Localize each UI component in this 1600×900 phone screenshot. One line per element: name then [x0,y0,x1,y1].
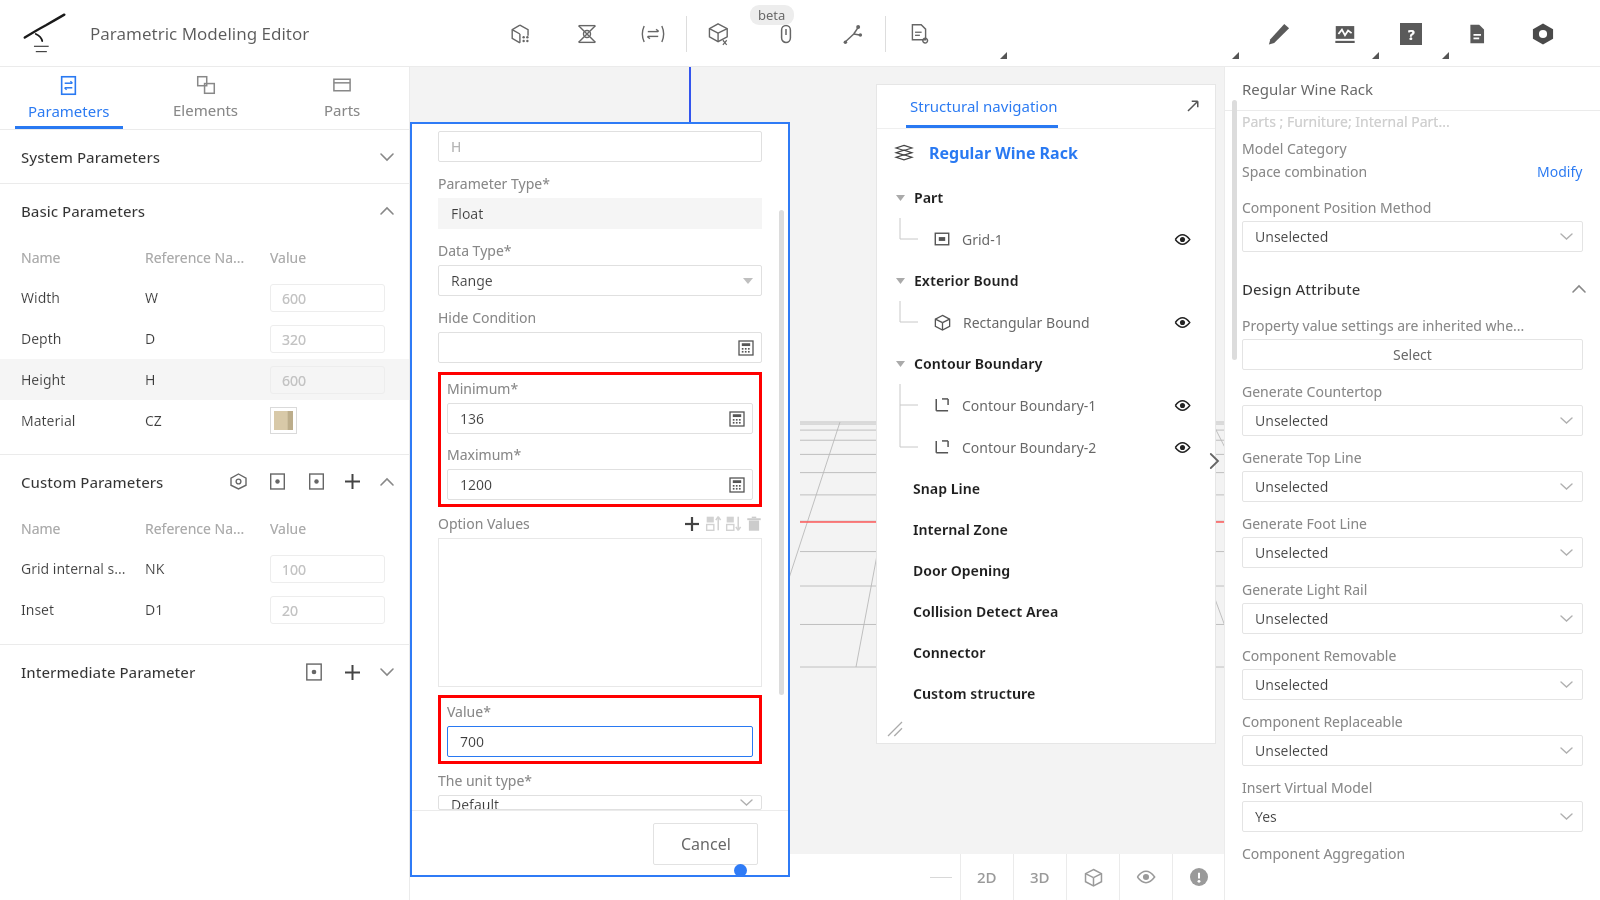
button[interactable]: Help [1378,0,1444,67]
button[interactable]: Grid internal s... [0,548,410,589]
staticText: Unselected [1255,411,1329,430]
button[interactable]: Solid view [1067,854,1119,900]
button[interactable]: Unselected [1242,221,1583,252]
button[interactable]: Toggle visibility [1175,398,1190,413]
button[interactable]: Move down [726,515,743,532]
button[interactable]: Analysis [1312,0,1378,67]
button[interactable]: Width [0,277,410,318]
staticText: Intermediate Parameter [21,662,196,682]
button[interactable]: Snap Line [876,468,1216,509]
button[interactable]: Yes [1242,801,1583,832]
button[interactable]: Link [753,0,819,67]
button[interactable]: Cancel [653,823,758,865]
staticText: Width [21,288,60,307]
button[interactable]: Inset [0,589,410,630]
button[interactable]: Target [226,469,251,494]
button[interactable] [438,332,762,363]
staticText: 1200 [460,475,493,494]
button[interactable]: Edit [1246,0,1312,67]
staticText: Component Aggregation [1242,844,1406,863]
staticText: Design Attribute [1242,279,1361,299]
staticText: Option Values [438,514,530,533]
staticText: Maximum* [447,445,522,464]
button[interactable]: Unselected [1242,603,1583,634]
staticText: Regular Wine Rack [1242,79,1374,99]
button[interactable]: Range [438,265,762,296]
button[interactable]: Collapse panel [1203,450,1225,472]
button[interactable]: Contour Boundary-1 [876,384,1216,426]
button[interactable]: Add option [683,515,701,533]
button[interactable]: Door Opening [876,550,1216,591]
button[interactable]: 136 [447,403,753,434]
button[interactable]: Unselected [1242,471,1583,502]
button[interactable]: Contour Boundary-2 [876,426,1216,468]
button[interactable]: Material [0,400,410,441]
staticText: Door Opening [913,561,1011,580]
button[interactable]: Custom Parameters [0,455,410,508]
button[interactable]: Export [304,469,329,494]
button[interactable]: Design Attribute [1225,269,1600,309]
button[interactable]: Internal Zone [876,509,1216,550]
button[interactable]: Parts [274,67,410,129]
button[interactable]: Move up [706,515,723,532]
button[interactable]: Add parameter [341,470,364,493]
button[interactable]: Depth [0,318,410,359]
button[interactable]: Connector [876,632,1216,673]
button[interactable]: Delete [746,516,762,532]
button[interactable]: Regular Wine Rack [876,129,1216,177]
button[interactable]: Custom structure [876,673,1216,714]
button[interactable]: Height [0,359,410,400]
button[interactable]: Intermediate Parameter [0,645,410,698]
button[interactable]: Elements [137,67,274,129]
staticText: Generate Top Line [1242,448,1362,467]
staticText: Unselected [1255,609,1329,628]
button[interactable]: Structural navigation [910,96,1058,116]
button[interactable]: Swap parameters [620,0,686,67]
button[interactable]: Toggle visibility [1175,315,1190,330]
button[interactable] [438,538,762,687]
staticText: Cancel [681,833,731,855]
button[interactable]: Formula cube [687,0,753,67]
button[interactable]: 2D [961,854,1013,900]
button[interactable]: Visibility [1120,854,1172,900]
button[interactable]: Select [1242,339,1583,370]
button[interactable]: Toggle visibility [1175,232,1190,247]
button[interactable]: Model grid [488,0,554,67]
button[interactable]: Unselected [1242,669,1583,700]
button[interactable]: Add [341,661,364,684]
button[interactable]: Import [265,469,290,494]
button[interactable]: 1200 [447,469,753,500]
button[interactable]: Float [438,198,762,229]
staticText: Rectangular Bound [963,313,1090,332]
button[interactable]: 3D [1014,854,1066,900]
staticText: 100 [282,560,307,579]
button[interactable]: Basic Parameters [0,184,410,237]
button[interactable]: Rectangular Bound [876,301,1216,343]
button[interactable]: Modify [1537,162,1583,181]
button[interactable]: Default [438,795,762,810]
button[interactable]: Settings [1510,0,1576,67]
button[interactable]: Report [1444,0,1510,67]
button[interactable]: Unselected [1242,735,1583,766]
staticText: Height [21,370,66,389]
button[interactable]: Document settings [886,0,952,67]
button[interactable]: Warnings [1173,854,1225,900]
button[interactable]: Unselected [1242,537,1583,568]
button[interactable]: Toggle visibility [1175,440,1190,455]
button[interactable]: Part [876,177,1216,218]
staticText: System Parameters [21,147,161,167]
button[interactable]: Unselected [1242,405,1583,436]
button[interactable]: Exterior Bound [876,260,1216,301]
button[interactable]: 700 [447,726,753,757]
button[interactable]: Contour Boundary [876,343,1216,384]
button[interactable]: Node graph [819,0,885,67]
staticText: Name [21,248,61,267]
button[interactable]: H [438,131,762,162]
button[interactable]: Parameters [0,67,137,129]
button[interactable]: Collision Detect Area [876,591,1216,632]
button[interactable]: Expand panel [1185,99,1200,114]
button[interactable]: Assembly [554,0,620,67]
button[interactable]: Import parameter [301,659,327,685]
button[interactable]: Grid-1 [876,218,1216,260]
button[interactable]: System Parameters [0,130,410,183]
